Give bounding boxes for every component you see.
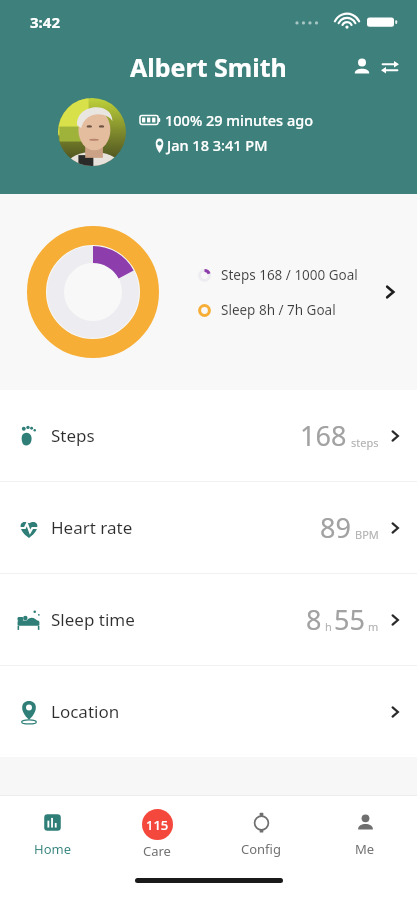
button[interactable]: Home	[0, 796, 105, 872]
staticText: Steps	[51, 424, 95, 447]
button[interactable]: Profile photo	[58, 98, 126, 166]
staticText: Steps 168 / 1000 Goal	[221, 266, 358, 284]
staticText: h	[325, 619, 332, 634]
button[interactable]: Config	[209, 796, 313, 872]
staticText: 55	[334, 601, 365, 638]
staticText: 168	[300, 417, 347, 454]
button[interactable]: Me	[313, 796, 417, 872]
button[interactable]: 115	[105, 796, 209, 872]
staticText: Sleep time	[51, 608, 135, 631]
button[interactable]: Switch user	[377, 54, 403, 80]
staticText: Location	[51, 700, 120, 723]
staticText: 89	[320, 509, 351, 546]
staticText: Albert Smith	[130, 50, 287, 84]
staticText: Config	[241, 840, 281, 858]
button[interactable]: Select user	[349, 54, 375, 80]
button[interactable]: Heart rate	[0, 482, 417, 573]
staticText: steps	[351, 435, 379, 450]
staticText: Me	[355, 840, 375, 858]
button[interactable]: Steps	[0, 390, 417, 481]
staticText: 115	[146, 816, 169, 834]
staticText: Jan 18 3:41 PM	[167, 135, 268, 155]
staticText: Heart rate	[51, 516, 133, 539]
staticText: 8	[306, 601, 322, 638]
staticText: 3:42	[30, 12, 60, 32]
staticText: Home	[34, 840, 71, 858]
button[interactable]: Details	[373, 275, 407, 309]
staticText: Care	[143, 842, 171, 860]
button[interactable]: Sleep time	[0, 574, 417, 665]
button[interactable]: Location	[0, 666, 417, 757]
button[interactable]: Steps 168 / 1000 Goal	[0, 194, 417, 390]
staticText: 100% 29 minutes ago	[165, 110, 314, 130]
staticText: BPM	[355, 527, 379, 542]
staticText: m	[368, 619, 379, 634]
staticText: Sleep 8h / 7h Goal	[221, 301, 336, 319]
